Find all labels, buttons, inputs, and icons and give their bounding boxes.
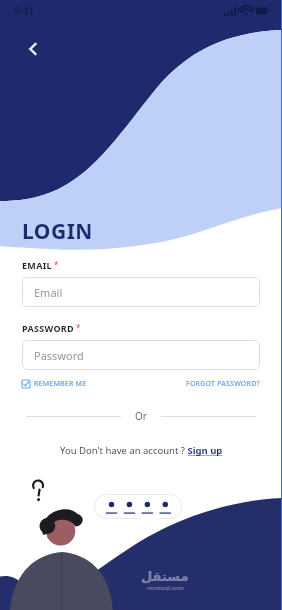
button[interactable]: FORGOT PASSWORD? [186,379,260,389]
staticText: You Don't have an account ? Sign up [60,444,223,457]
button[interactable]: REMEMBER ME [22,379,87,389]
button[interactable]: You Don't have an account ? Sign up [60,444,223,457]
staticText: * [76,322,81,333]
staticText: mostaql.com [147,584,184,592]
button[interactable]: Back [18,34,48,64]
staticText: Or [135,409,147,423]
staticText: * [54,259,59,270]
staticText: Password [34,348,84,363]
staticText: PASSWORD [22,322,74,334]
staticText: FORGOT PASSWORD? [186,379,260,389]
staticText: Email [34,285,63,300]
staticText: LOGIN [22,217,93,246]
staticText: EMAIL [22,259,52,271]
staticText: مستقل [141,569,189,584]
staticText: 9:41 [14,4,34,18]
button[interactable]: Email [22,277,260,307]
button[interactable]: Password [22,340,260,370]
staticText: REMEMBER ME [34,379,87,389]
